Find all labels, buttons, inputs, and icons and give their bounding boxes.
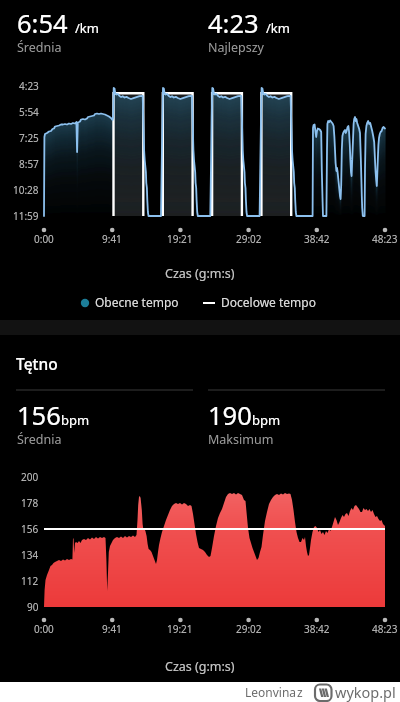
staticText: 7:25 [19, 131, 39, 145]
staticText: Średnia [17, 431, 62, 448]
staticText: 4:23 [208, 6, 259, 41]
staticText: 134 [21, 548, 39, 562]
staticText: 48:23 [372, 622, 398, 636]
staticText: bpm [61, 411, 90, 429]
staticText: 29:02 [236, 622, 262, 636]
staticText: 190 [208, 398, 252, 433]
staticText: Maksimum [208, 431, 274, 448]
staticText: 19:21 [167, 232, 193, 246]
staticText: 38:42 [304, 622, 330, 636]
staticText: 178 [21, 496, 39, 510]
staticText: 38:42 [304, 232, 330, 246]
staticText: 9:41 [102, 622, 122, 636]
staticText: 10:28 [13, 183, 39, 197]
staticText: 0:00 [34, 232, 54, 246]
staticText: 11:59 [13, 209, 39, 223]
staticText: 90 [27, 600, 39, 614]
staticText: /km [75, 19, 99, 37]
staticText: Tętno [16, 353, 58, 374]
staticText: Najlepszy [208, 39, 264, 56]
staticText: 29:02 [236, 232, 262, 246]
staticText: 48:23 [372, 232, 398, 246]
staticText: Docelowe tempo [221, 294, 316, 310]
staticText: Obecne tempo [95, 294, 179, 310]
staticText: 5:54 [19, 105, 39, 119]
staticText: 112 [21, 574, 39, 588]
staticText: 4:23 [19, 79, 39, 93]
staticText: 19:21 [167, 622, 193, 636]
staticText: Średnia [17, 39, 62, 56]
staticText: 156 [17, 398, 61, 433]
staticText: Czas (g:m:s) [165, 658, 235, 675]
staticText: Czas (g:m:s) [165, 265, 235, 282]
staticText: /km [266, 19, 290, 37]
staticText: 156 [21, 522, 39, 536]
staticText: Leonvina [245, 684, 297, 700]
staticText: 9:41 [102, 232, 122, 246]
staticText: 6:54 [17, 6, 68, 41]
staticText: bpm [252, 411, 281, 429]
staticText: 8:57 [19, 157, 39, 171]
staticText: wykop.pl [335, 682, 396, 702]
staticText: z [297, 684, 303, 700]
staticText: 200 [21, 470, 39, 484]
staticText: 0:00 [34, 622, 54, 636]
